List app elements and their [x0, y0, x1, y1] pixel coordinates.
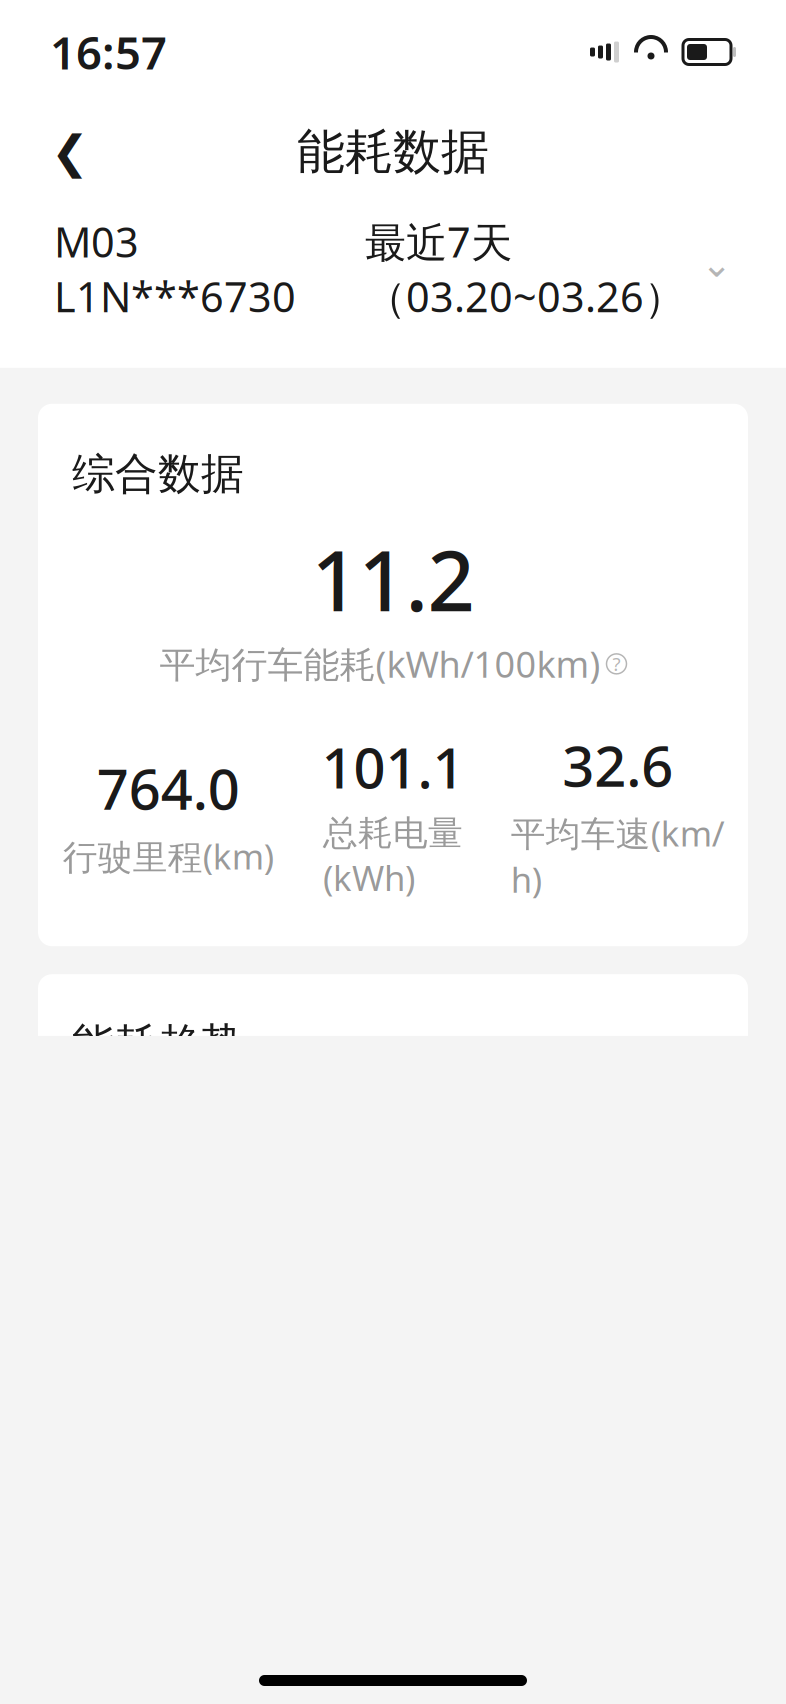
staticText: 行驶里程(km): [63, 833, 274, 879]
staticText: 平均车速(km/h): [511, 810, 725, 902]
staticText: ❮: [51, 126, 89, 178]
staticText: 能耗趋势: [72, 1018, 244, 1071]
staticText: 101.1: [321, 729, 464, 804]
staticText: 平均行车能耗(kWh/100km): [159, 640, 600, 688]
staticText: 16:57: [50, 22, 167, 82]
staticText: 总耗电量(kWh): [323, 812, 463, 900]
staticText: 最近7天（03.20~03.26）: [365, 214, 685, 324]
button[interactable]: M03 L1N***6730: [54, 200, 296, 338]
staticText: 32.6: [562, 728, 673, 802]
button[interactable]: 最近7天（03.20~03.26）: [365, 200, 732, 338]
staticText: 764.0: [97, 751, 240, 825]
staticText: 综合数据: [72, 448, 244, 500]
staticText: ?: [612, 651, 620, 676]
button[interactable]: Back: [26, 108, 114, 196]
staticText: 11.2: [311, 524, 474, 634]
staticText: ⌄: [701, 243, 732, 285]
staticText: 能耗数据: [297, 122, 489, 181]
staticText: M03 L1N***6730: [54, 214, 296, 324]
